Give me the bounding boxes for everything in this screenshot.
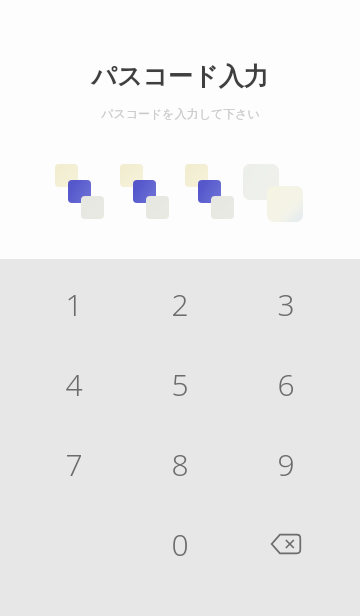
button[interactable]: 5 [148,344,212,424]
staticText: 2 [171,284,189,325]
staticText: 9 [277,444,295,485]
staticText: 7 [65,444,83,485]
button[interactable]: 9 [254,424,318,504]
button[interactable]: 6 [254,344,318,424]
button[interactable]: 1 [42,264,106,344]
staticText: 5 [171,364,189,405]
button[interactable]: 2 [148,264,212,344]
staticText: 8 [171,444,189,485]
button[interactable]: 7 [42,424,106,504]
staticText: 4 [65,364,83,405]
button[interactable]: 8 [148,424,212,504]
staticText: パスコード入力 [91,61,269,92]
button[interactable]: Backspace [254,504,318,584]
button[interactable]: 4 [42,344,106,424]
button[interactable]: 3 [254,264,318,344]
staticText: 0 [171,524,189,565]
button[interactable]: 0 [148,504,212,584]
staticText: 1 [65,284,83,325]
staticText: 6 [277,364,295,405]
staticText: 3 [277,284,295,325]
staticText: パスコードを入力して下さい [101,106,260,121]
